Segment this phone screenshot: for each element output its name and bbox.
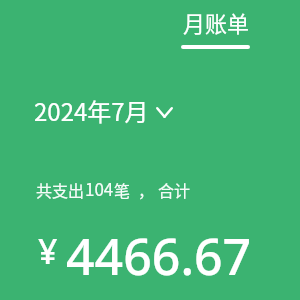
staticText: 共支出 xyxy=(36,178,85,201)
staticText: ， xyxy=(138,178,155,201)
button[interactable]: 月账单 xyxy=(176,4,256,52)
staticText: 笔 xyxy=(114,178,131,201)
staticText: 2024年7月 xyxy=(34,93,149,128)
other: Choose month xyxy=(156,107,173,118)
staticText: ¥ xyxy=(38,228,58,274)
staticText: 合计 xyxy=(158,178,191,201)
staticText: 104 xyxy=(85,176,114,201)
staticText: 月账单 xyxy=(183,6,250,38)
button[interactable]: 2024年7月 xyxy=(30,92,178,128)
staticText: 4466.67 xyxy=(66,222,252,290)
